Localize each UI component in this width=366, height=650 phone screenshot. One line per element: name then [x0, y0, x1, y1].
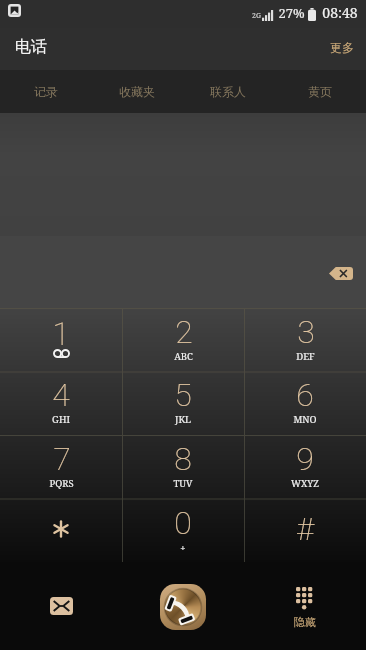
- staticText: TUV: [173, 477, 193, 490]
- button[interactable]: 收藏夹: [91, 70, 182, 113]
- button[interactable]: 电话: [15, 37, 47, 57]
- staticText: PQRS: [49, 477, 74, 490]
- button[interactable]: Call: [122, 562, 244, 650]
- staticText: 8: [174, 440, 192, 478]
- staticText: WXYZ: [291, 477, 319, 490]
- staticText: 电话: [15, 37, 47, 57]
- staticText: #: [296, 510, 314, 548]
- staticText: 0: [174, 504, 192, 542]
- staticText: 1: [52, 315, 70, 353]
- staticText: 黄页: [308, 84, 332, 99]
- button[interactable]: 6: [244, 371, 366, 434]
- button[interactable]: 7: [0, 434, 122, 498]
- button[interactable]: 2: [122, 308, 244, 371]
- staticText: 4: [52, 376, 70, 414]
- staticText: 2G: [252, 11, 261, 21]
- staticText: ABC: [174, 350, 193, 363]
- button[interactable]: 4: [0, 371, 122, 434]
- staticText: 3: [297, 313, 315, 351]
- staticText: 联系人: [210, 84, 246, 99]
- button[interactable]: 更多: [330, 40, 354, 55]
- button[interactable]: 9: [244, 434, 366, 498]
- button[interactable]: 联系人: [182, 70, 274, 113]
- staticText: 更多: [330, 40, 354, 55]
- button[interactable]: 1: [0, 308, 122, 371]
- staticText: DEF: [296, 350, 315, 363]
- staticText: MNO: [293, 413, 317, 426]
- staticText: 5: [174, 376, 192, 414]
- staticText: 2: [175, 313, 193, 351]
- button[interactable]: Message: [0, 562, 122, 650]
- staticText: 9: [296, 440, 314, 478]
- staticText: +: [180, 541, 186, 554]
- staticText: GHI: [52, 413, 70, 426]
- staticText: 收藏夹: [119, 84, 155, 99]
- button[interactable]: 5: [122, 371, 244, 434]
- staticText: 27%: [278, 4, 305, 22]
- staticText: 08:48: [322, 3, 358, 22]
- staticText: JKL: [175, 413, 191, 426]
- button[interactable]: #: [244, 498, 366, 562]
- button[interactable]: 黄页: [274, 70, 366, 113]
- button[interactable]: [0, 498, 122, 562]
- button[interactable]: 8: [122, 434, 244, 498]
- button[interactable]: 3: [244, 308, 366, 371]
- button[interactable]: 记录: [0, 70, 91, 113]
- staticText: 隐藏: [294, 615, 316, 629]
- button[interactable]: Backspace: [329, 267, 353, 280]
- staticText: 6: [296, 376, 314, 414]
- staticText: 记录: [34, 84, 58, 99]
- button[interactable]: 0: [122, 498, 244, 562]
- staticText: 7: [53, 440, 71, 478]
- button[interactable]: 隐藏: [244, 562, 366, 650]
